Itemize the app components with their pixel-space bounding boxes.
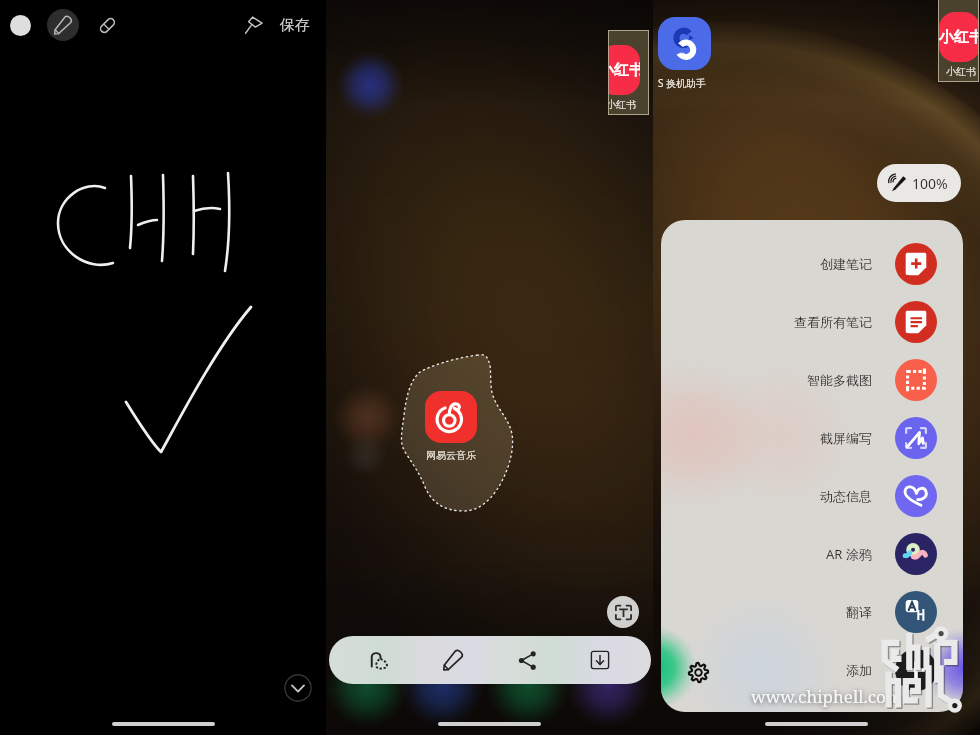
button[interactable]: 100% (877, 164, 961, 202)
button[interactable]: Extract text (607, 596, 639, 628)
staticText: 小红书 (946, 65, 976, 78)
button[interactable]: Share (505, 638, 549, 682)
button[interactable]: Colour (4, 9, 36, 41)
button[interactable]: S 换机助手 (658, 17, 711, 90)
staticText: 创建笔记 (820, 256, 872, 272)
staticText: 小红书 (608, 61, 640, 80)
button[interactable]: 网易云音乐 (419, 391, 483, 462)
button[interactable]: 截屏编写 (661, 409, 963, 467)
button[interactable]: Settings (682, 656, 714, 688)
staticText: 100% (912, 174, 948, 193)
button[interactable]: 创建笔记 (661, 235, 963, 293)
staticText: 网易云音乐 (426, 449, 476, 462)
button[interactable]: 小红书 (608, 30, 649, 115)
staticText: 动态信息 (820, 488, 872, 504)
staticText: S 换机助手 (658, 76, 707, 90)
button[interactable]: Collapse (284, 674, 312, 702)
button[interactable]: 翻译 (661, 583, 963, 641)
staticText: 保存 (280, 16, 310, 35)
staticText: AR 涂鸦 (826, 545, 872, 563)
staticText: 截屏编写 (820, 430, 872, 446)
staticText: 查看所有笔记 (794, 314, 872, 330)
staticText: 小红书 (939, 28, 979, 47)
staticText: 小红书 (608, 98, 636, 111)
staticText: 智能多截图 (807, 372, 872, 388)
button[interactable]: Pen (47, 9, 79, 41)
staticText: 添加 (846, 662, 872, 678)
button[interactable]: 小红书 (938, 0, 979, 82)
button[interactable]: Save (578, 638, 622, 682)
button[interactable]: 保存 (280, 16, 310, 35)
button[interactable]: AR 涂鸦 (661, 525, 963, 583)
button[interactable]: 查看所有笔记 (661, 293, 963, 351)
button[interactable]: 添加 (661, 641, 963, 699)
button[interactable]: 动态信息 (661, 467, 963, 525)
button[interactable]: Lasso select (358, 638, 402, 682)
button[interactable]: Draw (431, 638, 475, 682)
button[interactable]: Pin (238, 9, 270, 41)
button[interactable]: Eraser (91, 9, 123, 41)
staticText: www.chiphell.com (751, 685, 902, 708)
staticText: 翻译 (846, 604, 872, 620)
button[interactable]: 智能多截图 (661, 351, 963, 409)
